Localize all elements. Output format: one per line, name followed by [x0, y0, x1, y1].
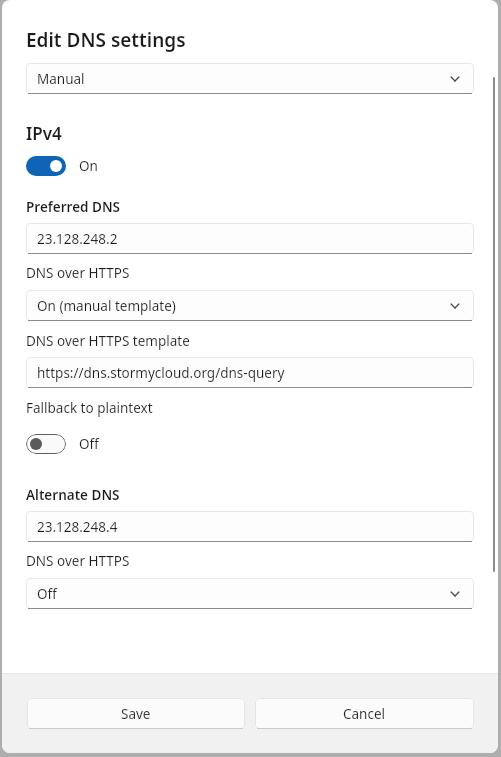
- button[interactable]: 23.128.248.4: [26, 511, 474, 542]
- button[interactable]: Off: [26, 578, 474, 609]
- staticText: IPv4: [26, 122, 62, 145]
- button[interactable]: Save: [27, 698, 245, 729]
- other: Expand: [447, 71, 463, 87]
- button[interactable]: Off: [26, 434, 99, 454]
- staticText: On: [79, 157, 98, 175]
- button[interactable]: On: [26, 156, 98, 176]
- other: Expand: [447, 298, 463, 314]
- staticText: Fallback to plaintext: [26, 399, 153, 417]
- staticText: Off: [79, 435, 99, 453]
- staticText: DNS over HTTPS template: [26, 332, 190, 350]
- other: Expand: [447, 586, 463, 602]
- button[interactable]: Cancel: [255, 698, 474, 729]
- staticText: Cancel: [343, 705, 386, 723]
- staticText: 23.128.248.4: [37, 518, 118, 536]
- staticText: Save: [121, 705, 151, 723]
- staticText: Manual: [37, 70, 447, 88]
- staticText: Alternate DNS: [26, 486, 120, 504]
- staticText: Off: [37, 585, 447, 603]
- button[interactable]: https://dns.stormycloud.org/dns-query: [26, 357, 474, 388]
- button[interactable]: On (manual template): [26, 290, 474, 321]
- staticText: On (manual template): [37, 297, 447, 315]
- staticText: 23.128.248.2: [37, 230, 118, 248]
- staticText: https://dns.stormycloud.org/dns-query: [37, 364, 285, 382]
- staticText: DNS over HTTPS: [26, 264, 130, 282]
- button[interactable]: Manual: [26, 63, 474, 94]
- staticText: Edit DNS settings: [26, 27, 186, 53]
- button[interactable]: 23.128.248.2: [26, 223, 474, 254]
- staticText: Preferred DNS: [26, 198, 121, 216]
- staticText: DNS over HTTPS: [26, 552, 130, 570]
